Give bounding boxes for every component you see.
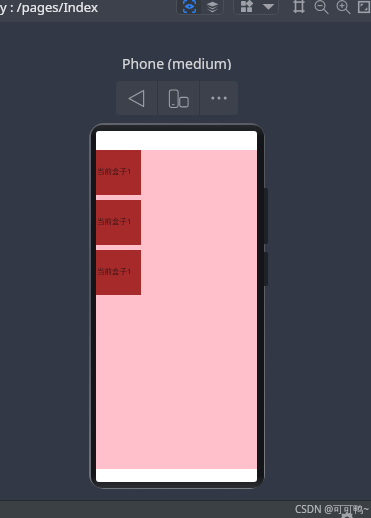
button[interactable]: 当前盒子1 — [96, 250, 141, 295]
button[interactable]: Devices — [234, 0, 258, 14]
staticText: 当前盒子1 — [97, 216, 132, 226]
button[interactable]: Layers — [201, 0, 223, 14]
button[interactable]: Frame — [289, 0, 309, 18]
staticText: 当前盒子1 — [97, 266, 132, 276]
button[interactable]: Fit to window — [354, 0, 371, 18]
button[interactable]: Preview — [177, 0, 201, 14]
button[interactable]: More options — [200, 81, 238, 115]
button[interactable]: Zoom in — [333, 0, 353, 18]
staticText: y : /pages/Index — [0, 0, 98, 16]
staticText: CSDN @可可鸭~ — [295, 502, 370, 516]
staticText: 当前盒子1 — [97, 166, 132, 176]
button[interactable]: 当前盒子1 — [96, 150, 141, 195]
button[interactable]: Zoom out — [311, 0, 331, 18]
button[interactable]: More devices — [258, 0, 278, 14]
button[interactable]: 当前盒子1 — [96, 200, 141, 245]
button[interactable]: Rotate device — [158, 81, 199, 115]
button[interactable]: Run preview — [116, 81, 157, 115]
staticText: Phone (medium) — [122, 54, 232, 70]
